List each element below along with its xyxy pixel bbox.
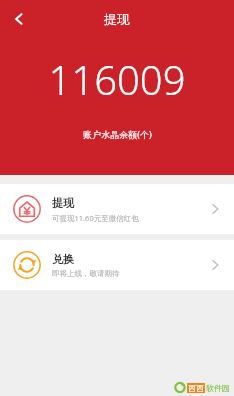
staticText: 西西	[188, 383, 204, 393]
staticText: 可提现11.60元至微信红包	[52, 213, 139, 223]
staticText: 116009	[48, 52, 186, 106]
staticText: 账户水晶余额(个)	[83, 128, 152, 140]
button[interactable]: 兑换	[0, 240, 234, 290]
staticText: 提现	[52, 196, 74, 210]
staticText: 兑换	[52, 252, 74, 266]
staticText: 即将上线，敬请期待	[52, 269, 120, 278]
staticText: 软件园	[206, 383, 230, 393]
staticText: 提现	[104, 11, 130, 27]
button[interactable]: Back	[0, 0, 38, 38]
button[interactable]: 提现	[0, 184, 234, 234]
